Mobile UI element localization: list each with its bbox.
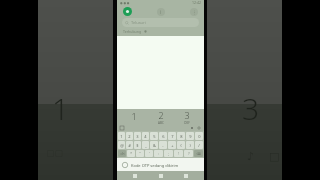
staticText: * — [130, 152, 132, 156]
staticText: 0 — [198, 134, 201, 139]
button[interactable]: 0 — [195, 132, 203, 140]
button[interactable]: 8 — [177, 132, 185, 140]
staticText: DEF — [184, 121, 190, 125]
staticText: 9 — [189, 134, 192, 139]
staticText: 8 — [180, 134, 183, 139]
staticText: + — [171, 143, 174, 148]
staticText: 12:42 — [192, 0, 201, 5]
staticText: & — [153, 143, 156, 148]
staticText: ; — [168, 152, 169, 156]
button[interactable]: 3 — [177, 109, 197, 125]
staticText: $ — [136, 143, 139, 148]
button[interactable]: Kode OTP sedang dikirim — [117, 158, 204, 171]
staticText: 7 — [171, 134, 174, 139]
staticText: " — [139, 152, 141, 156]
button[interactable]: ⌫ — [194, 150, 203, 157]
button[interactable]: / — [195, 141, 203, 149]
staticText: 3 — [136, 134, 139, 139]
button[interactable]: Call — [123, 7, 132, 16]
staticText: =\< — [120, 152, 125, 156]
staticText: : — [158, 152, 159, 156]
staticText: Telusuri — [131, 20, 146, 25]
staticText: ? — [188, 152, 190, 156]
staticText: 3 — [242, 88, 260, 129]
staticText: # — [128, 143, 131, 148]
button[interactable]: 3 — [134, 132, 141, 140]
button[interactable]: 2 — [151, 109, 171, 125]
button[interactable]: * — [127, 150, 135, 157]
staticText: ( — [180, 143, 182, 148]
button[interactable]: 7 — [168, 132, 176, 140]
button[interactable]: Back — [128, 171, 142, 180]
button[interactable]: & — [150, 141, 158, 149]
staticText: Terhubung — [123, 29, 142, 34]
staticText: 6 — [162, 134, 165, 139]
staticText: 4 — [144, 134, 147, 139]
staticText: 2 — [158, 109, 164, 121]
button[interactable]: Voice input — [190, 126, 194, 130]
button[interactable]: @ — [118, 141, 125, 149]
button[interactable]: " — [136, 150, 144, 157]
button[interactable]: 2 — [126, 132, 133, 140]
button[interactable]: Info — [157, 8, 165, 16]
staticText: 1 — [131, 110, 137, 122]
staticText: 1 — [120, 134, 123, 139]
button[interactable]: ! — [174, 150, 183, 157]
staticText: ● ● ● — [120, 1, 130, 5]
button[interactable]: Telusuri — [122, 18, 199, 27]
staticText: ' — [149, 152, 150, 156]
button[interactable]: 1 — [124, 109, 144, 125]
button[interactable]: ; — [164, 150, 173, 157]
button[interactable]: ' — [145, 150, 153, 157]
staticText: ! — [178, 152, 179, 156]
button[interactable]: Keyboard — [120, 126, 124, 130]
staticText: 2 — [128, 134, 131, 139]
staticText: _ — [145, 143, 147, 148]
button[interactable]: 9 — [186, 132, 194, 140]
staticText: 1 — [52, 88, 70, 129]
staticText: ABC — [158, 121, 164, 125]
staticText: ) — [189, 143, 191, 148]
button[interactable]: Recents — [179, 171, 193, 180]
button[interactable]: 5 — [150, 132, 158, 140]
button[interactable]: ? — [184, 150, 193, 157]
staticText: 5 — [153, 134, 156, 139]
button[interactable]: Settings — [197, 126, 201, 130]
button[interactable]: $ — [134, 141, 141, 149]
staticText: ⌫ — [196, 152, 201, 155]
staticText: / — [198, 143, 200, 148]
button[interactable]: _ — [142, 141, 149, 149]
button[interactable]: More options — [190, 8, 198, 16]
button[interactable]: 4 — [142, 132, 149, 140]
button[interactable]: 1 — [118, 132, 125, 140]
button[interactable]: 6 — [159, 132, 167, 140]
staticText: i — [160, 9, 162, 16]
staticText: Kode OTP sedang dikirim — [131, 163, 179, 168]
button[interactable]: - — [159, 141, 167, 149]
staticText: - — [162, 143, 164, 148]
button[interactable]: Home — [154, 171, 168, 180]
button[interactable]: ( — [177, 141, 185, 149]
button[interactable]: =\< — [118, 150, 126, 157]
staticText: @ — [120, 143, 124, 148]
button[interactable]: # — [126, 141, 133, 149]
staticText: 3 — [184, 109, 190, 121]
button[interactable]: : — [154, 150, 163, 157]
button[interactable]: ) — [186, 141, 194, 149]
button[interactable]: + — [168, 141, 176, 149]
